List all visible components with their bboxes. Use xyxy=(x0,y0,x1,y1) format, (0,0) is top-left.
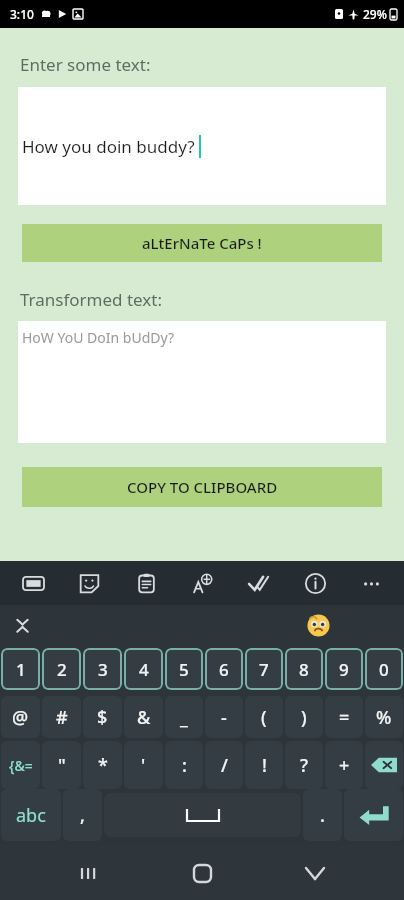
staticText: ? xyxy=(300,753,309,778)
button[interactable]: Emoji suggestion xyxy=(303,610,333,640)
button[interactable]: Backspace xyxy=(365,741,403,789)
button[interactable]: GIF xyxy=(18,568,48,598)
button[interactable]: _ xyxy=(165,696,203,738)
staticText: 3 xyxy=(98,658,108,681)
button[interactable]: 0 xyxy=(365,648,403,690)
staticText: - xyxy=(221,705,227,730)
button[interactable]: * xyxy=(83,741,122,789)
button[interactable]: + xyxy=(325,741,363,789)
staticText: 9 xyxy=(339,658,349,681)
staticText: 7 xyxy=(259,658,269,681)
staticText: & xyxy=(137,705,151,730)
button[interactable]: 9 xyxy=(325,648,363,690)
staticText: Transformed text: xyxy=(20,288,163,311)
staticText: + xyxy=(339,753,350,778)
staticText: 4 xyxy=(139,658,149,681)
staticText: How you doin buddy? xyxy=(22,135,195,158)
button[interactable]: aLtErNaTe CaPs ! xyxy=(22,224,382,262)
button[interactable]: abc xyxy=(1,789,61,841)
staticText: _ xyxy=(180,705,188,730)
button[interactable]: How you doin buddy? xyxy=(18,87,386,205)
button[interactable]: Info xyxy=(300,568,330,598)
button[interactable]: 4 xyxy=(124,648,163,690)
button[interactable]: = xyxy=(325,696,363,738)
button[interactable]: Space xyxy=(104,793,301,837)
button[interactable]: 8 xyxy=(285,648,323,690)
button[interactable]: - xyxy=(205,696,243,738)
button[interactable]: 2 xyxy=(42,648,81,690)
staticText: . xyxy=(320,803,325,828)
staticText: abc xyxy=(16,803,46,828)
button[interactable]: % xyxy=(365,696,403,738)
staticText: 1 xyxy=(16,658,26,681)
staticText: 6 xyxy=(219,658,229,681)
staticText: ! xyxy=(262,753,267,778)
button[interactable]: Collapse toolbar xyxy=(8,611,36,639)
staticText: 2 xyxy=(57,658,67,681)
staticText: 5 xyxy=(179,658,189,681)
button[interactable]: # xyxy=(42,696,81,738)
button[interactable]: & xyxy=(124,696,163,738)
button[interactable]: / xyxy=(205,741,243,789)
staticText: : xyxy=(182,753,187,778)
staticText: aLtErNaTe CaPs ! xyxy=(142,233,262,253)
button[interactable]: HoW YoU DoIn bUdDy? xyxy=(18,321,386,443)
staticText: $ xyxy=(97,705,108,730)
button[interactable]: COPY TO CLIPBOARD xyxy=(22,467,382,507)
button[interactable]: $ xyxy=(83,696,122,738)
button[interactable]: " xyxy=(42,741,81,789)
button[interactable]: Spell check xyxy=(243,568,273,598)
button[interactable]: More options xyxy=(356,568,386,598)
staticText: * xyxy=(98,753,108,778)
staticText: % xyxy=(376,705,392,730)
button[interactable]: ? xyxy=(285,741,323,789)
staticText: ) xyxy=(301,705,307,730)
staticText: {&= xyxy=(9,756,33,775)
button[interactable]: : xyxy=(165,741,203,789)
button[interactable]: Stickers xyxy=(74,568,104,598)
staticText: HoW YoU DoIn bUdDy? xyxy=(22,328,174,347)
staticText: 0 xyxy=(379,658,389,681)
button[interactable]: , xyxy=(63,789,102,841)
staticText: COPY TO CLIPBOARD xyxy=(127,477,278,497)
button[interactable]: Home xyxy=(178,849,226,897)
button[interactable]: Recent apps xyxy=(65,849,113,897)
staticText: = xyxy=(339,705,350,730)
button[interactable]: ( xyxy=(245,696,283,738)
button[interactable]: Enter xyxy=(344,789,403,841)
button[interactable]: ) xyxy=(285,696,323,738)
staticText: , xyxy=(80,803,85,828)
button[interactable]: Hide keyboard xyxy=(291,849,339,897)
button[interactable]: Clipboard xyxy=(131,568,161,598)
button[interactable]: 5 xyxy=(165,648,203,690)
staticText: " xyxy=(58,753,66,778)
button[interactable]: ' xyxy=(124,741,163,789)
button[interactable]: 3 xyxy=(83,648,122,690)
staticText: / xyxy=(221,753,228,778)
button[interactable]: 1 xyxy=(1,648,40,690)
staticText: ' xyxy=(141,753,146,778)
staticText: @ xyxy=(12,705,29,730)
staticText: Enter some text: xyxy=(20,53,151,76)
staticText: 8 xyxy=(299,658,309,681)
button[interactable]: {&= xyxy=(1,741,40,789)
button[interactable]: Translate xyxy=(187,568,217,598)
button[interactable]: . xyxy=(303,789,342,841)
staticText: # xyxy=(56,705,68,730)
staticText: ( xyxy=(261,705,267,730)
button[interactable]: ! xyxy=(245,741,283,789)
button[interactable]: @ xyxy=(1,696,40,738)
button[interactable]: 7 xyxy=(245,648,283,690)
staticText: 29% xyxy=(363,6,387,22)
button[interactable]: 6 xyxy=(205,648,243,690)
staticText: 3:10 xyxy=(10,6,34,22)
